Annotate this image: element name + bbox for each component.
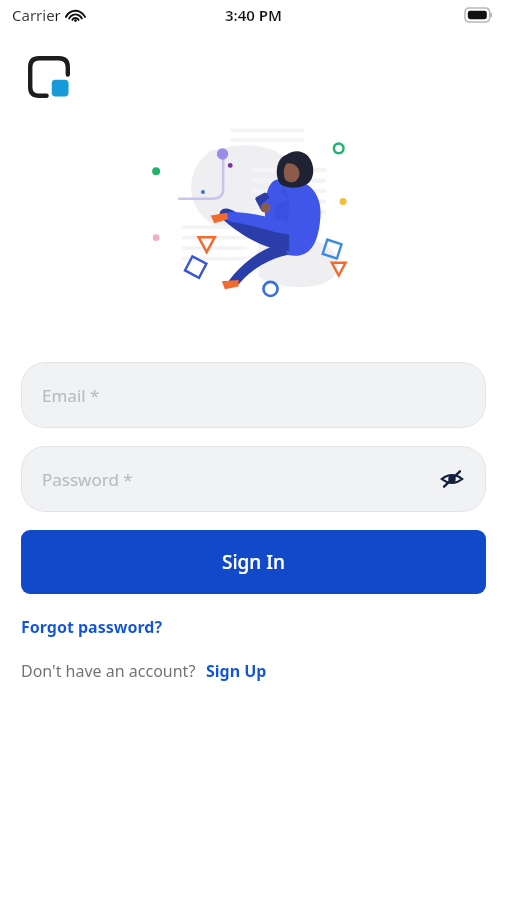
staticText: Email * xyxy=(42,384,100,407)
staticText: Sign In xyxy=(222,549,285,575)
staticText: Password * xyxy=(42,468,133,491)
button[interactable]: Sign Up xyxy=(206,658,267,684)
staticText: Forgot password? xyxy=(21,616,163,638)
button[interactable]: Email * xyxy=(21,362,486,428)
button[interactable]: Show password xyxy=(432,459,472,499)
button[interactable]: Sign In xyxy=(21,530,486,594)
staticText: Don't have an account? xyxy=(21,660,196,682)
staticText: Carrier xyxy=(12,5,61,25)
button[interactable]: Password * xyxy=(21,446,486,512)
button[interactable]: Forgot password? xyxy=(21,614,163,640)
staticText: Sign Up xyxy=(206,660,267,682)
staticText: 3:40 PM xyxy=(225,5,282,25)
